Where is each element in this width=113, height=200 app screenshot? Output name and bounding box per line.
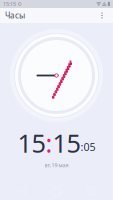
staticText: 15 xyxy=(52,126,80,160)
button[interactable]: Дополнительно xyxy=(96,8,108,22)
staticText: :05 xyxy=(80,140,95,154)
staticText: 15 xyxy=(17,126,45,160)
staticText: вт, 19 мая xyxy=(44,162,68,169)
staticText: 15:15 xyxy=(3,0,16,8)
staticText: : xyxy=(45,126,52,160)
staticText: Часы xyxy=(5,10,25,21)
